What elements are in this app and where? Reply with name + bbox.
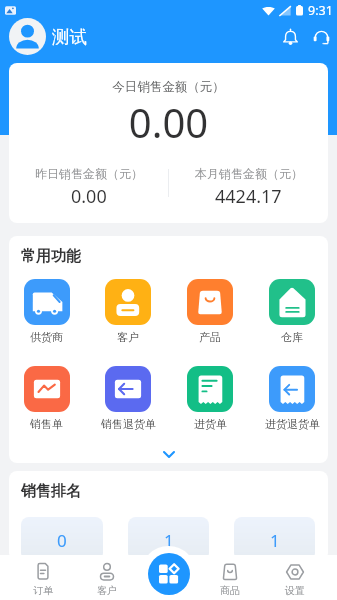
button[interactable]: 仓库 bbox=[251, 279, 328, 344]
button[interactable]: Profile bbox=[9, 18, 46, 55]
staticText: 客户 bbox=[117, 330, 139, 344]
staticText: 客户 bbox=[97, 584, 117, 597]
button[interactable]: 产品 bbox=[169, 279, 251, 344]
staticText: 0 bbox=[57, 529, 67, 552]
button[interactable]: All functions bbox=[148, 553, 190, 595]
staticText: 销售退货单 bbox=[101, 417, 156, 431]
staticText: 常用功能 bbox=[21, 247, 81, 266]
staticText: 0.00 bbox=[71, 184, 107, 209]
button[interactable]: 客户 bbox=[87, 279, 169, 344]
staticText: 今日销售金额（元） bbox=[9, 79, 328, 95]
button[interactable]: 设置 bbox=[263, 555, 326, 600]
button[interactable]: 客户 bbox=[74, 555, 140, 600]
staticText: 测试 bbox=[52, 26, 87, 48]
button[interactable]: 供货商 bbox=[9, 279, 87, 344]
staticText: 供货商 bbox=[30, 330, 63, 344]
button[interactable]: 进货单 bbox=[169, 366, 251, 431]
staticText: 1 bbox=[164, 529, 174, 552]
staticText: 昨日销售金额（元） bbox=[35, 166, 143, 181]
staticText: 订单 bbox=[33, 584, 53, 597]
staticText: 产品 bbox=[199, 330, 221, 344]
button[interactable]: Expand more bbox=[9, 445, 328, 463]
button[interactable]: 1 bbox=[128, 517, 209, 561]
staticText: 仓库 bbox=[281, 330, 303, 344]
button[interactable]: 1 bbox=[234, 517, 315, 561]
staticText: 进货退货单 bbox=[265, 417, 320, 431]
staticText: 1 bbox=[270, 529, 280, 552]
button[interactable]: 销售退货单 bbox=[87, 366, 169, 431]
button[interactable]: 0 bbox=[21, 517, 103, 561]
staticText: 设置 bbox=[285, 584, 305, 597]
staticText: 销售排名 bbox=[21, 482, 81, 501]
staticText: 商品 bbox=[220, 584, 240, 597]
staticText: 0.00 bbox=[9, 95, 328, 149]
button[interactable]: Customer service bbox=[307, 23, 335, 51]
staticText: 本月销售金额（元） bbox=[195, 166, 303, 181]
button[interactable]: 销售单 bbox=[9, 366, 87, 431]
staticText: 9:31 bbox=[308, 2, 333, 19]
button[interactable]: 商品 bbox=[197, 555, 263, 600]
button[interactable]: 订单 bbox=[11, 555, 74, 600]
button[interactable]: 进货退货单 bbox=[251, 366, 328, 431]
button[interactable]: Notifications bbox=[276, 23, 304, 51]
staticText: 进货单 bbox=[194, 417, 227, 431]
staticText: 4424.17 bbox=[215, 184, 282, 209]
staticText: 销售单 bbox=[30, 417, 63, 431]
